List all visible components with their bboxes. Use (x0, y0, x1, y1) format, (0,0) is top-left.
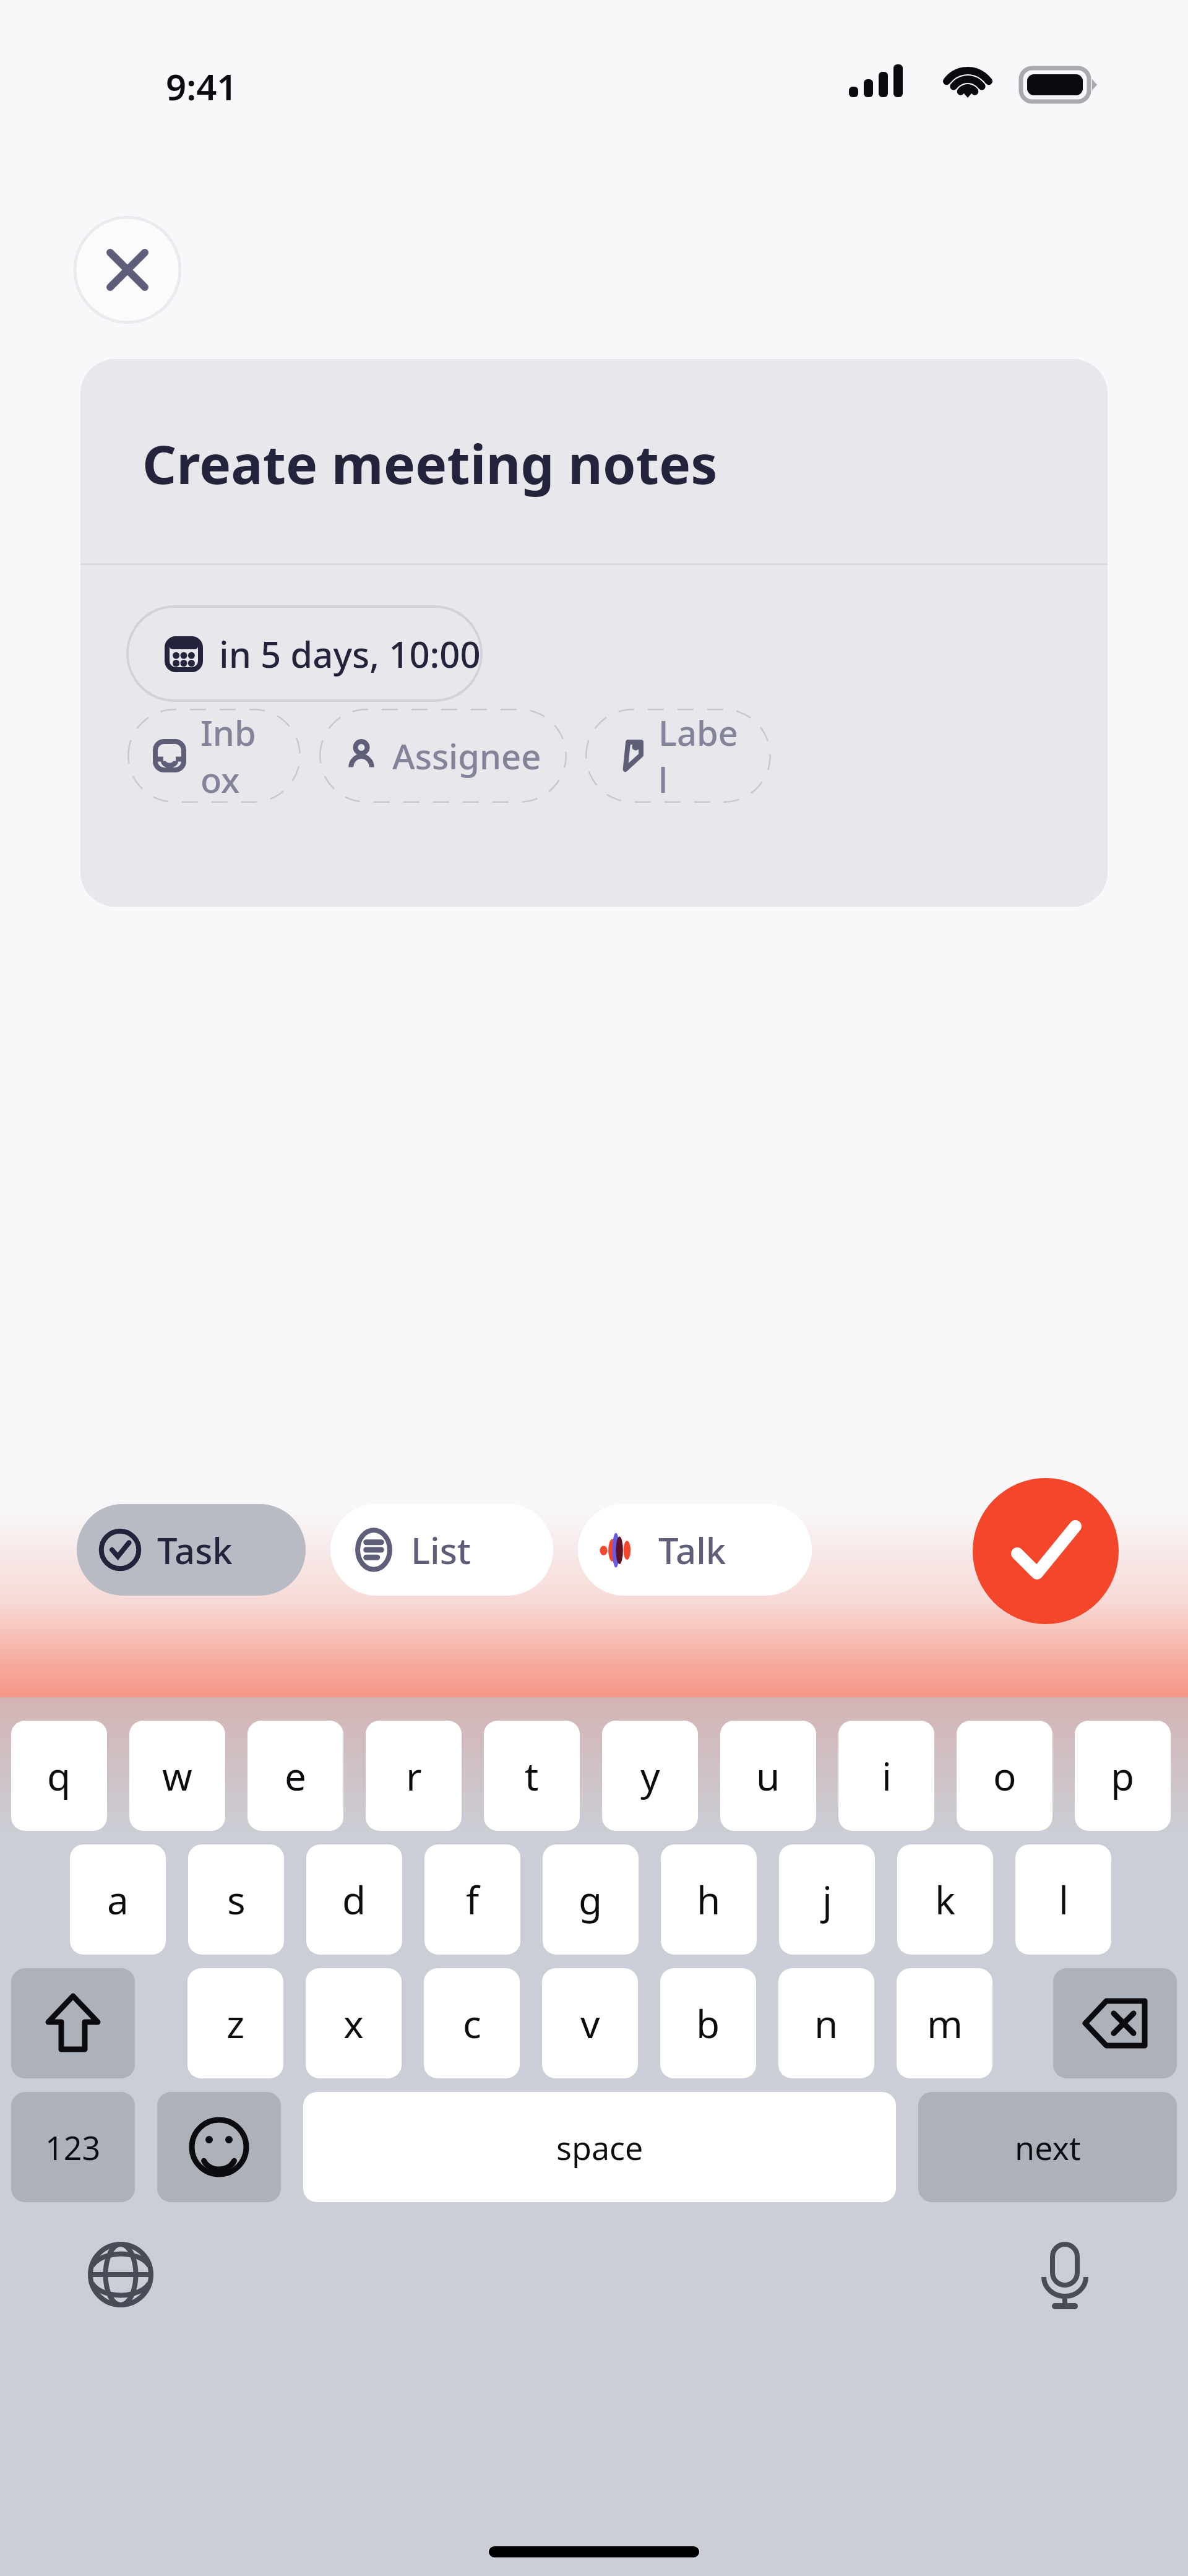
button[interactable]: y (602, 1721, 698, 1831)
button[interactable]: j (779, 1844, 875, 1955)
staticText: 123 (45, 2125, 101, 2169)
button[interactable]: Task (77, 1504, 306, 1596)
staticText: j (822, 1874, 832, 1926)
button[interactable]: i (838, 1721, 934, 1831)
button[interactable]: g (543, 1844, 639, 1955)
button[interactable]: u (720, 1721, 816, 1831)
button[interactable]: Create meeting notes (142, 427, 718, 499)
staticText: p (1111, 1750, 1135, 1802)
button[interactable]: Voice input (1031, 2241, 1099, 2309)
button[interactable]: p (1075, 1721, 1171, 1831)
button[interactable]: b (660, 1968, 756, 2078)
button[interactable]: 123 (11, 2092, 135, 2202)
staticText: g (579, 1874, 603, 1926)
staticText: f (466, 1874, 480, 1926)
staticText: x (343, 1997, 364, 2049)
staticText: h (697, 1874, 721, 1926)
staticText: in 5 days, 10:00 (219, 629, 481, 678)
staticText: s (227, 1874, 246, 1926)
button[interactable]: in 5 days, 10:00 (127, 607, 481, 701)
staticText: k (935, 1874, 956, 1926)
button[interactable]: a (70, 1844, 166, 1955)
staticText: c (463, 1997, 481, 2049)
staticText: b (696, 1997, 720, 2049)
button[interactable]: n (778, 1968, 874, 2078)
button[interactable]: List (330, 1504, 553, 1596)
button[interactable]: m (897, 1968, 992, 2078)
staticText: Inbox (200, 709, 276, 803)
button[interactable]: Backspace (1053, 1968, 1177, 2078)
button[interactable]: Confirm (973, 1478, 1119, 1624)
button[interactable]: Talk (578, 1504, 812, 1596)
button[interactable]: Emoji (157, 2092, 281, 2202)
button[interactable]: space (303, 2092, 896, 2202)
staticText: 9:41 (166, 62, 238, 111)
button[interactable]: e (247, 1721, 343, 1831)
button[interactable]: o (957, 1721, 1052, 1831)
button[interactable]: q (11, 1721, 107, 1831)
button[interactable]: k (897, 1844, 993, 1955)
staticText: z (226, 1997, 245, 2049)
button[interactable]: s (188, 1844, 284, 1955)
button[interactable]: Shift (11, 1968, 135, 2078)
button[interactable]: t (484, 1721, 580, 1831)
staticText: next (1015, 2125, 1081, 2169)
staticText: space (556, 2125, 643, 2169)
button[interactable]: Inbox (127, 709, 301, 803)
staticText: a (107, 1874, 129, 1926)
button[interactable]: x (306, 1968, 402, 2078)
staticText: v (580, 1997, 600, 2049)
staticText: o (993, 1750, 1017, 1802)
button[interactable]: Assignee (319, 709, 567, 803)
staticText: Task (157, 1526, 233, 1575)
button[interactable]: Label (585, 709, 771, 803)
staticText: y (640, 1750, 660, 1802)
button[interactable]: Close (73, 215, 182, 324)
staticText: Talk (658, 1526, 726, 1575)
button[interactable]: next (918, 2092, 1177, 2202)
staticText: List (411, 1526, 471, 1575)
staticText: t (525, 1750, 539, 1802)
staticText: Label (658, 709, 746, 803)
button[interactable]: v (542, 1968, 638, 2078)
button[interactable]: Switch language (87, 2241, 155, 2309)
staticText: u (756, 1750, 780, 1802)
staticText: m (927, 1997, 963, 2049)
staticText: e (285, 1750, 306, 1802)
staticText: r (406, 1750, 422, 1802)
staticText: n (814, 1997, 838, 2049)
button[interactable]: w (129, 1721, 225, 1831)
button[interactable]: c (424, 1968, 520, 2078)
button[interactable]: l (1015, 1844, 1111, 1955)
staticText: q (47, 1750, 71, 1802)
button[interactable]: h (661, 1844, 757, 1955)
staticText: i (882, 1750, 892, 1802)
staticText: l (1059, 1874, 1069, 1926)
button[interactable]: f (424, 1844, 520, 1955)
button[interactable]: r (366, 1721, 462, 1831)
staticText: d (342, 1874, 366, 1926)
button[interactable]: d (306, 1844, 402, 1955)
staticText: Assignee (392, 732, 541, 779)
staticText: w (162, 1750, 192, 1802)
button[interactable]: z (187, 1968, 283, 2078)
